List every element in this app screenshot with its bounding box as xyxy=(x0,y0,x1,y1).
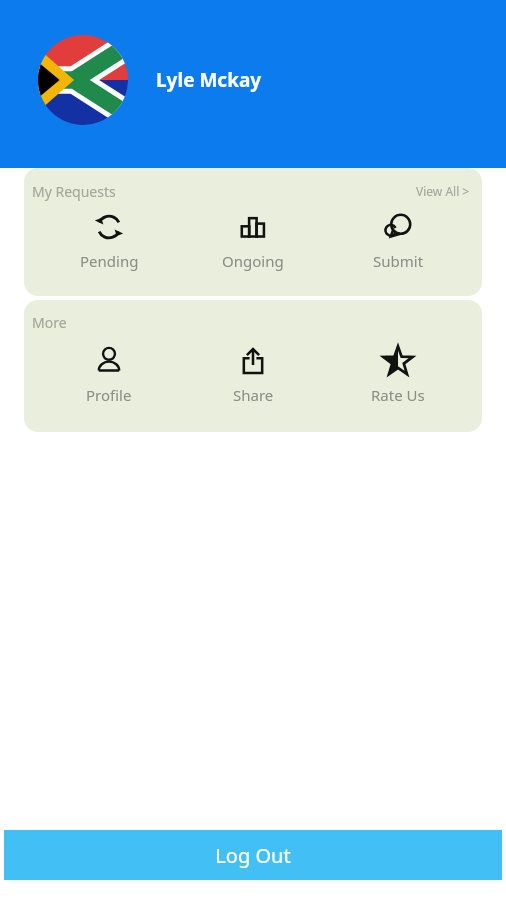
staticText: View All > xyxy=(416,183,470,199)
other: Ongoing xyxy=(236,210,270,244)
staticText: Ongoing xyxy=(222,251,284,271)
button[interactable]: View All > xyxy=(414,181,472,201)
staticText: My Requests xyxy=(32,182,116,201)
staticText: Pending xyxy=(80,251,139,271)
other: Rate Us xyxy=(381,344,415,378)
other: Share xyxy=(236,344,270,378)
button[interactable]: Submit xyxy=(338,206,458,275)
button[interactable]: Pending xyxy=(49,206,169,275)
other: Submit xyxy=(381,210,415,244)
staticText: Submit xyxy=(373,251,424,271)
staticText: Lyle Mckay xyxy=(156,67,262,93)
staticText: Rate Us xyxy=(371,385,425,405)
button[interactable]: Share xyxy=(193,340,313,409)
staticText: More xyxy=(32,313,67,332)
other: Profile xyxy=(92,344,126,378)
button[interactable]: Ongoing xyxy=(193,206,313,275)
staticText: Share xyxy=(233,385,274,405)
button[interactable]: Log Out xyxy=(4,830,502,880)
button[interactable]: Profile xyxy=(49,340,169,409)
button[interactable]: Rate Us xyxy=(338,340,458,409)
staticText: Log Out xyxy=(215,842,291,869)
staticText: Profile xyxy=(86,385,132,405)
other: Pending xyxy=(92,210,126,244)
